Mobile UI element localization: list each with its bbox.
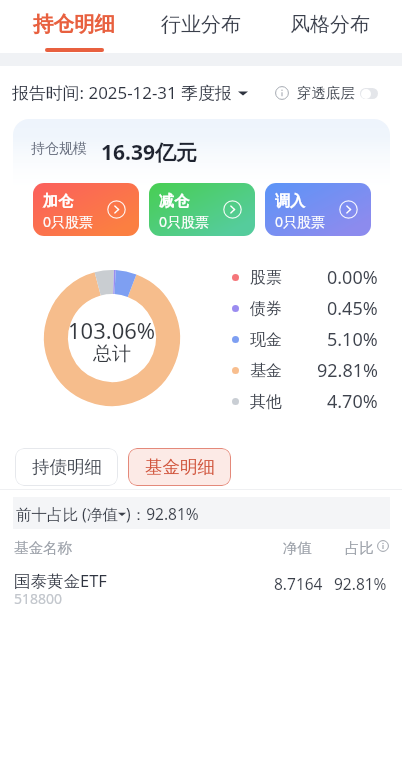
- staticText: 减仓: [159, 192, 189, 211]
- staticText: 报告时间: 2025-12-31 季度报: [12, 81, 232, 104]
- staticText: 风格分布: [290, 12, 370, 37]
- staticText: 4.70%: [327, 389, 378, 408]
- button[interactable]: 行业分布: [137, 0, 265, 53]
- staticText: 基金: [250, 361, 282, 380]
- staticText: 5.10%: [327, 327, 378, 346]
- staticText: 16.39亿元: [101, 138, 197, 167]
- staticText: 总计: [93, 342, 131, 366]
- staticText: 现金: [250, 330, 282, 349]
- staticText: 前十占比 (净值: [16, 503, 118, 524]
- button[interactable]: 加仓: [33, 183, 139, 236]
- staticText: 持仓规模: [31, 140, 87, 158]
- staticText: 国泰黄金ETF: [14, 569, 107, 592]
- staticText: 0只股票: [159, 212, 210, 231]
- staticText: 518800: [14, 589, 63, 608]
- staticText: 0.45%: [327, 296, 378, 315]
- staticText: 0.00%: [327, 265, 378, 284]
- staticText: 其他: [250, 392, 282, 411]
- staticText: 0只股票: [43, 212, 94, 231]
- staticText: 92.81%: [317, 358, 378, 377]
- button[interactable]: 减仓: [149, 183, 255, 236]
- button[interactable]: 调入: [265, 183, 371, 236]
- button[interactable]: 持债明细: [15, 448, 118, 486]
- staticText: 基金明细: [145, 456, 215, 478]
- staticText: 占比: [345, 539, 374, 557]
- button[interactable]: 国泰黄金ETF: [0, 563, 402, 611]
- staticText: 穿透底层: [297, 84, 355, 102]
- staticText: 92.81%: [334, 573, 387, 594]
- staticText: 调入: [275, 192, 305, 211]
- staticText: 103.06%: [68, 315, 156, 345]
- staticText: 0只股票: [275, 212, 326, 231]
- staticText: 净值: [283, 539, 312, 557]
- staticText: )：92.81%: [126, 503, 199, 524]
- staticText: 基金名称: [14, 539, 72, 557]
- staticText: 8.7164: [274, 573, 323, 594]
- staticText: 持债明细: [32, 456, 102, 478]
- button[interactable]: 风格分布: [266, 0, 394, 53]
- staticText: 行业分布: [161, 12, 241, 37]
- staticText: 股票: [250, 268, 282, 287]
- staticText: 持仓明细: [33, 11, 115, 37]
- button[interactable]: 占比说明: [377, 540, 389, 552]
- staticText: 加仓: [43, 192, 73, 211]
- button[interactable]: 持仓明细: [8, 0, 139, 53]
- button[interactable]: 穿透底层: [275, 84, 378, 102]
- staticText: 债券: [250, 299, 282, 318]
- button[interactable]: 报告时间: 2025-12-31 季度报: [12, 81, 248, 104]
- button[interactable]: 基金明细: [128, 448, 231, 486]
